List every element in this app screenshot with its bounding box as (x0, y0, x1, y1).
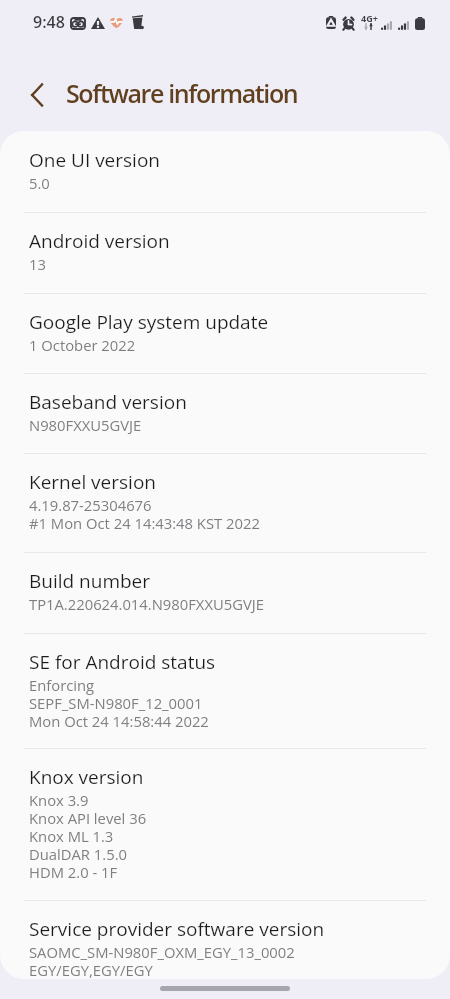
staticText: 1 October 2022 (29, 337, 136, 355)
button[interactable]: Baseband version (0, 373, 450, 453)
button[interactable]: SE for Android status (0, 633, 450, 748)
button[interactable]: Build number (0, 552, 450, 633)
staticText: Google Play system update (29, 312, 269, 334)
staticText: Knox version (29, 767, 144, 789)
button[interactable]: One UI version (0, 131, 450, 212)
staticText: 4G+ (361, 12, 378, 24)
staticText: Baseband version (29, 392, 187, 414)
staticText: Enforcing SEPF_SM-N980F_12_0001 Mon Oct … (29, 677, 209, 731)
staticText: 5.0 (29, 175, 50, 193)
staticText: SE for Android status (29, 652, 216, 674)
staticText: 4.19.87-25304676 #1 Mon Oct 24 14:43:48 … (29, 497, 260, 533)
staticText: 13 (29, 256, 46, 274)
staticText: N980FXXU5GVJE (29, 417, 142, 435)
staticText: Service provider software version (29, 919, 325, 941)
button[interactable]: Knox version (0, 748, 450, 900)
staticText: Build number (29, 571, 151, 593)
button[interactable]: Back (20, 78, 54, 112)
staticText: One UI version (29, 150, 160, 172)
staticText: Android version (29, 231, 170, 253)
button[interactable]: Android version (0, 212, 450, 293)
staticText: SAOMC_SM-N980F_OXM_EGY_13_0002 EGY/EGY,E… (29, 944, 295, 979)
staticText: Kernel version (29, 472, 156, 494)
staticText: 9:48 (33, 11, 65, 33)
staticText: Knox 3.9 Knox API level 36 Knox ML 1.3 D… (29, 792, 147, 882)
staticText: Software information (66, 76, 298, 110)
staticText: TP1A.220624.014.N980FXXU5GVJE (29, 596, 264, 614)
button[interactable]: Google Play system update (0, 293, 450, 373)
button[interactable]: Service provider software version (0, 900, 450, 979)
button[interactable]: Kernel version (0, 453, 450, 552)
